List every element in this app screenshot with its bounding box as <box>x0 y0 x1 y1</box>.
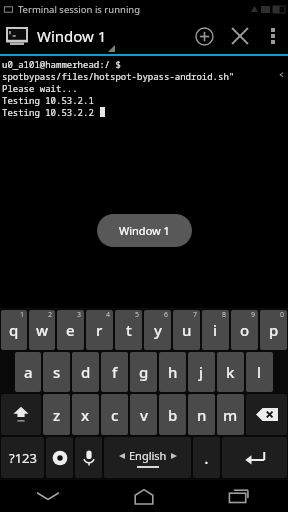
button[interactable]: . <box>193 437 220 478</box>
staticText: Window 1 <box>119 223 170 238</box>
button[interactable]: q <box>1 310 27 350</box>
button[interactable]: y <box>144 310 171 350</box>
staticText: 5 <box>135 310 140 320</box>
staticText: 9 <box>251 310 256 320</box>
staticText: 7 <box>193 310 198 320</box>
staticText: u0_a101@hammerhead:/ $ <box>2 58 121 70</box>
staticText: y <box>154 320 162 340</box>
staticText: spotbypass/files/hotspot-bypass-android.… <box>2 70 235 82</box>
button[interactable]: f <box>101 352 128 392</box>
button[interactable]: English <box>104 437 191 478</box>
staticText: Testing 10.53.2.1 <box>2 94 94 106</box>
staticText: Please wait... <box>2 82 78 94</box>
staticText: m <box>223 405 238 425</box>
button[interactable]: z <box>43 394 70 435</box>
staticText: ?123 <box>9 449 37 467</box>
staticText: l <box>257 362 262 382</box>
staticText: k <box>226 362 235 382</box>
staticText: t <box>126 320 132 340</box>
staticText: . <box>204 447 209 469</box>
button[interactable]: o <box>231 310 258 350</box>
staticText: v <box>140 405 148 425</box>
button[interactable]: n <box>188 394 215 435</box>
staticText: Window 1 <box>37 26 107 46</box>
button[interactable]: Keyboard settings <box>46 437 73 478</box>
staticText: j <box>199 362 204 382</box>
staticText: w <box>36 320 49 340</box>
staticText: g <box>139 362 149 382</box>
button[interactable]: s <box>43 352 70 392</box>
button[interactable]: Close window <box>222 18 258 54</box>
button[interactable]: b <box>159 394 186 435</box>
button[interactable]: g <box>130 352 157 392</box>
button[interactable]: l <box>246 352 273 392</box>
staticText: 0 <box>280 310 285 320</box>
button[interactable]: d <box>72 352 99 392</box>
button[interactable]: Shift <box>1 394 41 435</box>
button[interactable]: p <box>260 310 287 350</box>
button[interactable]: a <box>15 352 41 392</box>
button[interactable]: Recent apps <box>192 480 288 512</box>
staticText: o <box>240 320 250 340</box>
staticText: a <box>24 362 33 382</box>
staticText: English <box>129 448 167 463</box>
button[interactable]: w <box>29 310 55 350</box>
button[interactable]: k <box>217 352 244 392</box>
staticText: 8 <box>222 310 227 320</box>
button[interactable]: Window 1 <box>6 26 107 46</box>
staticText: s <box>53 362 61 382</box>
staticText: f <box>112 362 118 382</box>
button[interactable]: More options <box>258 21 288 51</box>
button[interactable]: u <box>173 310 200 350</box>
staticText: r <box>96 320 103 340</box>
button[interactable]: v <box>130 394 157 435</box>
staticText: q <box>9 320 19 340</box>
button[interactable]: m <box>217 394 244 435</box>
staticText: Testing 10.53.2.2 <box>2 106 100 118</box>
button[interactable]: Enter <box>222 437 287 478</box>
staticText: e <box>66 320 75 340</box>
button[interactable]: x <box>72 394 99 435</box>
staticText: u <box>182 320 192 340</box>
button[interactable]: e <box>57 310 84 350</box>
button[interactable]: New window <box>186 18 222 54</box>
staticText: c <box>111 405 119 425</box>
staticText: < <box>279 69 284 80</box>
staticText: d <box>81 362 91 382</box>
staticText: x <box>81 405 90 425</box>
staticText: z <box>53 405 61 425</box>
button[interactable]: ?123 <box>1 437 44 478</box>
staticText: 6 <box>164 310 169 320</box>
staticText: 4 <box>106 310 111 320</box>
button[interactable]: Home <box>96 480 192 512</box>
button[interactable]: j <box>188 352 215 392</box>
button[interactable]: c <box>101 394 128 435</box>
staticText: Terminal session is running <box>18 3 141 16</box>
button[interactable]: Hide keyboard <box>0 480 96 512</box>
staticText: 1 <box>20 310 25 320</box>
button[interactable]: r <box>86 310 113 350</box>
staticText: b <box>168 405 178 425</box>
button[interactable]: t <box>115 310 142 350</box>
staticText: n <box>197 405 207 425</box>
button[interactable]: h <box>159 352 186 392</box>
staticText: p <box>269 320 279 340</box>
staticText: 2 <box>48 310 53 320</box>
button[interactable]: Voice input <box>75 437 102 478</box>
button[interactable]: i <box>202 310 229 350</box>
button[interactable]: Backspace <box>246 394 287 435</box>
staticText: 3 <box>77 310 82 320</box>
staticText: h <box>168 362 178 382</box>
staticText: i <box>213 320 218 340</box>
